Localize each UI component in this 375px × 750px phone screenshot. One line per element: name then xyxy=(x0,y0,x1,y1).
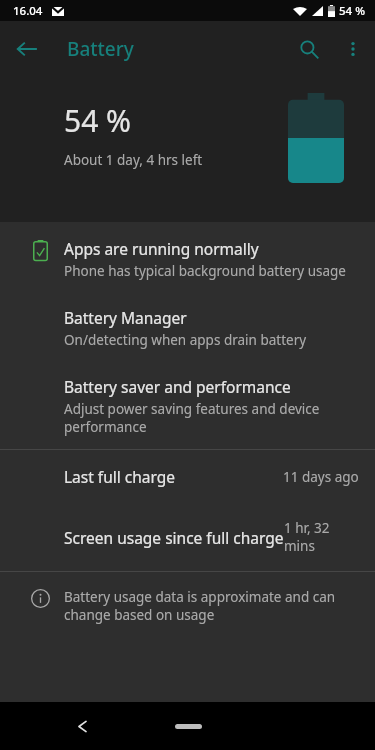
button[interactable]: Apps are running normally xyxy=(0,224,375,293)
staticText: Battery Manager xyxy=(64,307,187,328)
button[interactable]: More options xyxy=(331,27,375,71)
button[interactable]: Screen usage since full charge xyxy=(0,503,375,571)
staticText: Last full charge xyxy=(64,466,176,487)
staticText: 16.04 xyxy=(13,3,43,19)
button[interactable]: Battery Manager xyxy=(0,293,375,362)
button[interactable]: Home xyxy=(148,713,228,739)
button[interactable]: Search xyxy=(287,27,331,71)
staticText: On/detecting when apps drain battery xyxy=(64,331,307,349)
staticText: 54 % xyxy=(64,100,132,141)
staticText: About 1 day, 4 hrs left xyxy=(64,151,203,169)
staticText: Phone has typical background battery usa… xyxy=(64,262,346,280)
staticText: Battery saver and performance xyxy=(64,376,291,397)
staticText: Battery usage data is approximate and ca… xyxy=(64,588,349,624)
staticText: 1 hr, 32 mins xyxy=(284,519,359,555)
button[interactable]: Navigate up xyxy=(5,27,49,71)
staticText: 11 days ago xyxy=(283,468,359,486)
staticText: Battery xyxy=(67,36,134,62)
staticText: Apps are running normally xyxy=(64,238,259,259)
staticText: Screen usage since full charge xyxy=(64,527,284,548)
staticText: 54 % xyxy=(339,3,365,19)
button[interactable]: Last full charge xyxy=(0,450,375,503)
staticText: Adjust power saving features and device … xyxy=(64,400,355,436)
button[interactable]: Back xyxy=(62,706,102,746)
button[interactable]: Battery saver and performance xyxy=(0,362,375,449)
